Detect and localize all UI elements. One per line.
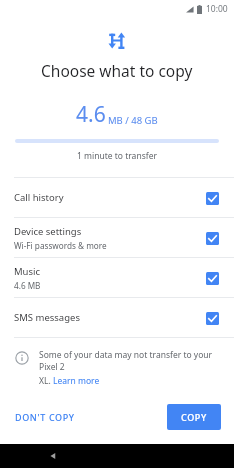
staticText: Choose what to copy [41, 60, 193, 81]
staticText: COPY [181, 411, 207, 423]
staticText: Call history [14, 191, 64, 204]
staticText: DON'T COPY [15, 411, 75, 423]
button[interactable]: DON'T COPY [13, 405, 77, 429]
staticText: 10:00 [206, 3, 228, 15]
staticText: SMS messages [14, 311, 80, 324]
button[interactable]: COPY [167, 404, 221, 430]
button[interactable]: Learn more [53, 375, 100, 387]
staticText: 4.6 MB [14, 280, 41, 291]
staticText: Music [14, 265, 41, 278]
button[interactable]: Back [44, 447, 62, 465]
button[interactable]: Checked [203, 269, 221, 287]
staticText: XL. [39, 375, 53, 387]
staticText: 4.6 [76, 100, 106, 129]
button[interactable]: Call history [0, 178, 234, 217]
button[interactable]: Checked [203, 229, 221, 247]
staticText: Device settings [14, 225, 82, 238]
staticText: Wi-Fi passwords & more [14, 240, 107, 251]
button[interactable]: Music [0, 258, 234, 297]
staticText: MB / 48 GB [108, 114, 158, 127]
staticText: 1 minute to transfer [77, 150, 157, 162]
staticText: Some of your data may not transfer to yo… [39, 349, 218, 373]
button[interactable]: Device settings [0, 218, 234, 257]
button[interactable]: SMS messages [0, 298, 234, 337]
button[interactable]: Checked [203, 309, 221, 327]
button[interactable]: Checked [203, 189, 221, 207]
staticText: Learn more [53, 375, 100, 387]
